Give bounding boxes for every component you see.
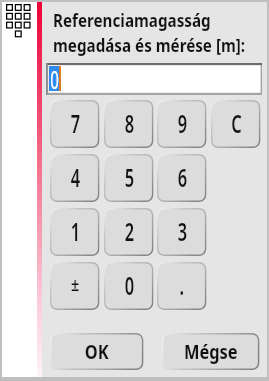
staticText: Mégse <box>184 338 238 365</box>
staticText: 8 <box>125 105 134 140</box>
staticText: . <box>179 267 184 302</box>
staticText: C <box>231 105 242 140</box>
button[interactable]: 7 <box>50 100 100 149</box>
button[interactable]: . <box>157 262 207 311</box>
staticText: 1 <box>71 213 80 248</box>
button[interactable]: 0 <box>104 262 154 311</box>
staticText: 2 <box>125 213 134 248</box>
button[interactable]: OK <box>50 333 144 371</box>
staticText: 5 <box>125 159 134 194</box>
staticText: 6 <box>178 159 187 194</box>
staticText: 0 <box>50 61 59 96</box>
button[interactable]: Mégse <box>162 333 260 371</box>
button[interactable]: ± <box>50 262 100 311</box>
button[interactable]: 9 <box>157 100 207 149</box>
staticText: 7 <box>71 105 80 140</box>
staticText: 9 <box>178 105 187 140</box>
staticText: 4 <box>71 159 80 194</box>
button[interactable]: C <box>211 100 261 149</box>
staticText: OK <box>85 338 109 365</box>
staticText: Referenciamagasság megadása és mérése [m… <box>53 8 246 58</box>
button[interactable]: 8 <box>104 100 154 149</box>
staticText: ± <box>71 272 80 297</box>
button[interactable]: 6 <box>157 154 207 203</box>
button[interactable]: 4 <box>50 154 100 203</box>
button[interactable]: 2 <box>104 208 154 257</box>
button[interactable]: 5 <box>104 154 154 203</box>
staticText: 3 <box>178 213 187 248</box>
other: Keypad <box>6 4 34 40</box>
staticText: 0 <box>125 267 134 302</box>
button[interactable]: 1 <box>50 208 100 257</box>
button[interactable]: 3 <box>157 208 207 257</box>
